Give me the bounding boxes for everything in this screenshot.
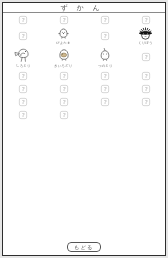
- button[interactable]: みはっけん: [101, 72, 109, 80]
- staticText: ?: [104, 72, 107, 80]
- staticText: ?: [104, 98, 107, 106]
- button[interactable]: みはっけん: [60, 16, 68, 24]
- button[interactable]: みはっけん: [142, 16, 150, 24]
- button[interactable]: みはっけん: [142, 53, 150, 61]
- button[interactable]: みはっけん: [142, 85, 150, 93]
- staticText: ?: [63, 72, 66, 80]
- button[interactable]: つのとり: [97, 47, 113, 68]
- staticText: ?: [63, 111, 66, 119]
- staticText: ?: [22, 16, 25, 24]
- button[interactable]: みはっけん: [101, 85, 109, 93]
- staticText: ?: [145, 16, 148, 24]
- button[interactable]: みはっけん: [60, 72, 68, 80]
- staticText: ?: [22, 85, 25, 93]
- button[interactable]: きいろどり: [54, 47, 73, 68]
- staticText: ?: [22, 98, 25, 106]
- staticText: つのとり: [98, 64, 113, 68]
- staticText: ?: [145, 72, 148, 80]
- button[interactable]: みはっけん: [60, 98, 68, 106]
- staticText: ?: [22, 32, 25, 40]
- staticText: ずかん: [60, 3, 109, 12]
- staticText: ?: [145, 85, 148, 93]
- staticText: ?: [145, 98, 148, 106]
- staticText: ?: [104, 32, 107, 40]
- staticText: しろとり: [16, 64, 31, 68]
- staticText: ?: [63, 98, 66, 106]
- staticText: ?: [22, 111, 25, 119]
- staticText: ?: [63, 85, 66, 93]
- button[interactable]: みはっけん: [19, 85, 27, 93]
- button[interactable]: みはっけん: [142, 72, 150, 80]
- button[interactable]: みはっけん: [60, 85, 68, 93]
- button[interactable]: みはっけん: [101, 98, 109, 106]
- button[interactable]: しろとり: [15, 47, 31, 68]
- staticText: ?: [104, 85, 107, 93]
- button[interactable]: もどる: [67, 242, 101, 252]
- button[interactable]: みはっけん: [101, 16, 109, 24]
- staticText: ?: [145, 53, 148, 61]
- staticText: きいろどり: [54, 64, 73, 68]
- button[interactable]: みはっけん: [19, 72, 27, 80]
- button[interactable]: みはっけん: [19, 16, 27, 24]
- button[interactable]: ぴよたま: [56, 27, 71, 45]
- button[interactable]: みはっけん: [142, 98, 150, 106]
- staticText: くりぼう: [138, 41, 153, 45]
- button[interactable]: みはっけん: [19, 111, 27, 119]
- staticText: ?: [22, 72, 25, 80]
- button[interactable]: くりぼう: [138, 27, 153, 45]
- staticText: もどる: [74, 244, 94, 251]
- button[interactable]: みはっけん: [19, 98, 27, 106]
- button[interactable]: みはっけん: [60, 111, 68, 119]
- staticText: ?: [63, 16, 66, 24]
- button[interactable]: みはっけん: [19, 32, 27, 40]
- button[interactable]: みはっけん: [101, 32, 109, 40]
- staticText: ぴよたま: [56, 41, 71, 45]
- staticText: ?: [104, 16, 107, 24]
